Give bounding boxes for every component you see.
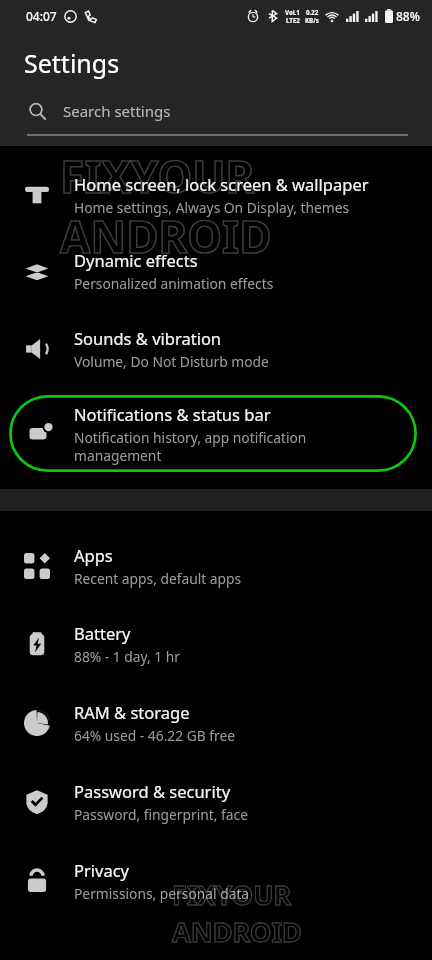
staticText: 88% xyxy=(396,8,420,24)
staticText: Apps xyxy=(74,544,113,566)
staticText: RAM & storage xyxy=(74,701,190,723)
staticText: FIXYOUR xyxy=(60,146,255,206)
button[interactable]: Sounds & vibration xyxy=(0,310,432,388)
staticText: Sounds & vibration xyxy=(74,327,222,349)
staticText: KB/s xyxy=(305,16,319,24)
staticText: Permissions, personal data xyxy=(74,884,250,903)
button[interactable]: Dynamic effects xyxy=(0,232,432,310)
staticText: Notification history, app notification m… xyxy=(74,428,389,465)
staticText: Volume, Do Not Disturb mode xyxy=(74,352,269,371)
staticText: ANDROID xyxy=(172,913,302,950)
staticText: Password, fingerprint, face xyxy=(74,805,248,824)
button[interactable]: Apps xyxy=(0,527,432,605)
staticText: Settings xyxy=(24,46,120,80)
button[interactable]: Search xyxy=(0,98,432,124)
staticText: Battery xyxy=(74,622,131,644)
staticText: Privacy xyxy=(74,859,130,881)
staticText: Password & security xyxy=(74,780,231,802)
staticText: 64% used - 46.22 GB free xyxy=(74,726,236,745)
staticText: LTE2 xyxy=(286,16,300,24)
staticText: Recent apps, default apps xyxy=(74,569,242,588)
button[interactable]: Password & security xyxy=(0,762,432,841)
button[interactable]: Battery xyxy=(0,605,432,683)
other: Search xyxy=(28,102,47,121)
staticText: Search settings xyxy=(63,101,171,121)
button[interactable]: RAM & storage xyxy=(0,683,432,762)
staticText: 04:07 xyxy=(26,8,57,24)
staticText: Dynamic effects xyxy=(74,249,198,271)
staticText: Home settings, Always On Display, themes xyxy=(74,198,350,217)
button[interactable]: Notifications & status bar xyxy=(9,395,417,472)
staticText: Notifications & status bar xyxy=(74,403,271,425)
staticText: ANDROID xyxy=(60,206,272,266)
staticText: 88% - 1 day, 1 hr xyxy=(74,647,181,666)
staticText: Home screen, lock screen & wallpaper xyxy=(74,173,369,195)
button[interactable]: Privacy xyxy=(0,841,432,920)
staticText: 0.22 xyxy=(306,8,319,16)
staticText: FIXYOUR xyxy=(172,876,292,913)
staticText: Personalized animation effects xyxy=(74,274,274,293)
button[interactable]: Home screen, lock screen & wallpaper xyxy=(0,158,432,232)
staticText: VoL1 xyxy=(285,8,300,16)
